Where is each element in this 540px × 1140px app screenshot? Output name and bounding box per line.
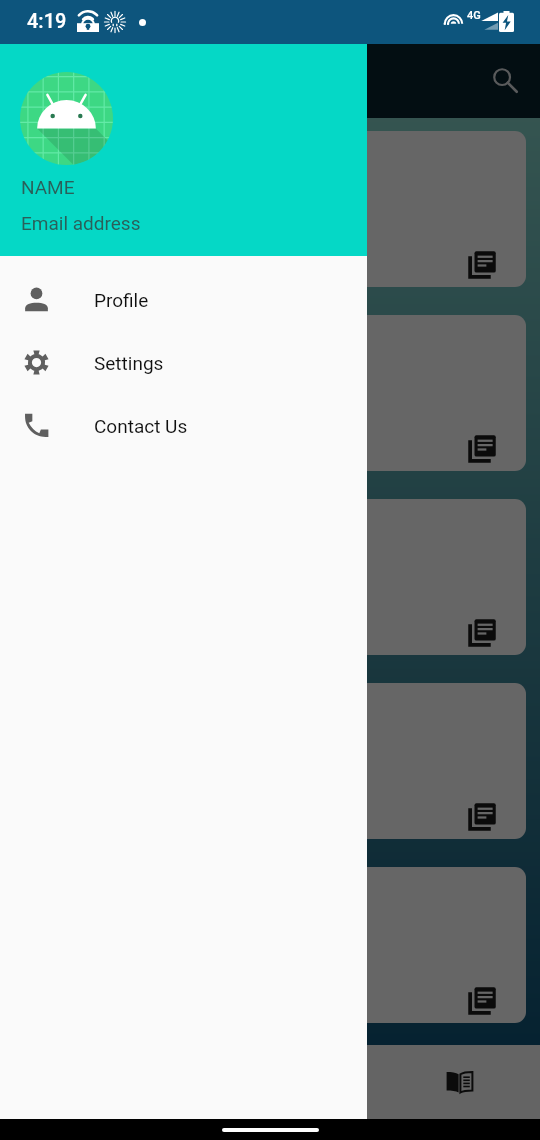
button[interactable] — [14, 499, 526, 655]
button[interactable]: Library — [378, 1045, 540, 1119]
button[interactable] — [14, 683, 526, 839]
button[interactable] — [14, 867, 526, 1023]
staticText: Email address — [21, 212, 141, 234]
button[interactable]: Settings — [0, 331, 367, 394]
button[interactable] — [14, 315, 526, 471]
button[interactable]: Search — [481, 57, 529, 105]
button[interactable]: Profile — [0, 268, 367, 331]
staticText: NAME — [21, 176, 75, 198]
staticText: 4G — [467, 9, 481, 22]
staticText: Profile — [94, 289, 149, 311]
staticText: 4:19 — [27, 9, 67, 32]
button[interactable]: Contact Us — [0, 394, 367, 457]
button[interactable] — [14, 131, 526, 287]
button[interactable]: Saved — [216, 1045, 378, 1119]
staticText: Settings — [94, 352, 164, 374]
staticText: Contact Us — [94, 415, 188, 437]
